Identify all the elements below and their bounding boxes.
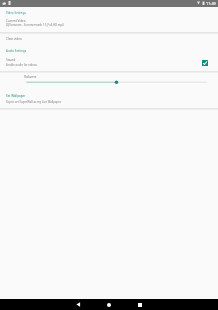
button[interactable]: Sound enabled [200, 55, 216, 71]
staticText: 11:49 [206, 1, 216, 6]
staticText: Video Settings [6, 11, 26, 15]
button[interactable]: Home [99, 299, 119, 310]
staticText: Sound [6, 58, 16, 62]
staticText: Enable audio for videos. [6, 63, 38, 67]
staticText: Current Video [6, 19, 26, 23]
staticText: Set Wallpaper [6, 94, 26, 98]
button[interactable] [0, 56, 218, 68]
staticText: Audio Settings [6, 49, 27, 53]
staticText: Tap to set SuperWall as my Live Wallpape… [6, 100, 62, 104]
button[interactable] [0, 17, 218, 29]
button[interactable] [0, 92, 218, 105]
button[interactable]: Volume slider [22, 78, 212, 87]
staticText: DJ Earworm - Summermash 15_Full-HD.mp4 [6, 23, 64, 27]
button[interactable]: Recent apps [130, 299, 150, 310]
button[interactable]: Back [68, 299, 88, 310]
staticText: Volume [24, 74, 37, 79]
staticText: Clear video [6, 37, 22, 41]
button[interactable] [0, 35, 218, 44]
